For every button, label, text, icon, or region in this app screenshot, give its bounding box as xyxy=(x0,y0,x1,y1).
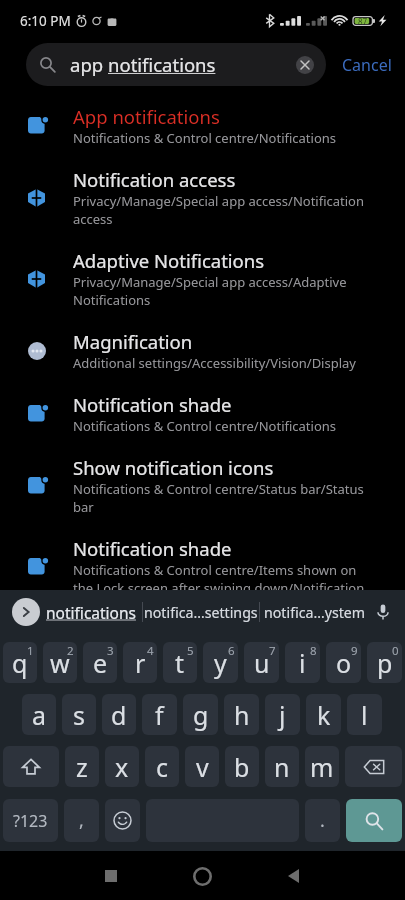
staticText: notifications xyxy=(46,602,136,623)
staticText: Notifications & Control centre/Status ba… xyxy=(73,480,372,516)
button[interactable]: h xyxy=(224,694,259,735)
staticText: g xyxy=(193,698,209,732)
button[interactable]: . xyxy=(305,799,340,842)
staticText: Adaptive Notifications xyxy=(73,248,265,273)
button[interactable]: k xyxy=(306,694,341,735)
button[interactable]: notifica…settings xyxy=(143,590,259,634)
button[interactable]: Notification shade xyxy=(0,526,405,607)
staticText: ?123 xyxy=(13,810,48,832)
staticText: q xyxy=(12,646,28,680)
staticText: j xyxy=(279,698,286,732)
button[interactable]: f xyxy=(142,694,177,735)
button[interactable]: m xyxy=(305,746,339,787)
staticText: w xyxy=(50,646,70,680)
staticText: 87 xyxy=(358,16,368,27)
staticText: Notification access xyxy=(73,167,236,192)
button[interactable]: p xyxy=(367,642,402,683)
staticText: e xyxy=(93,646,108,680)
staticText: notifications xyxy=(108,52,216,77)
button[interactable]: Clear search xyxy=(296,56,314,74)
staticText: 6 xyxy=(228,643,235,659)
staticText: 9 xyxy=(351,643,358,659)
button[interactable]: w xyxy=(43,642,77,683)
staticText: b xyxy=(234,750,250,784)
staticText: notifica…settings xyxy=(144,603,258,622)
staticText: notifica…ystem xyxy=(264,603,366,622)
staticText: 5 xyxy=(187,643,194,659)
button[interactable]: , xyxy=(64,799,99,842)
staticText: i xyxy=(299,646,306,680)
staticText: 0 xyxy=(392,643,399,659)
staticText: l xyxy=(361,698,368,732)
staticText: n xyxy=(274,750,290,784)
button[interactable]: l xyxy=(347,694,382,735)
button[interactable]: ?123 xyxy=(3,799,58,842)
staticText: Cancel xyxy=(342,54,392,76)
staticText: . xyxy=(320,808,325,833)
staticText: 6:10 PM xyxy=(20,12,71,30)
staticText: , xyxy=(79,808,84,833)
button[interactable]: x xyxy=(105,746,139,787)
button[interactable]: y xyxy=(203,642,238,683)
staticText: Additional settings/Accessibility/Vision… xyxy=(73,354,356,372)
staticText: 7 xyxy=(269,643,276,659)
staticText: p xyxy=(377,646,393,680)
button[interactable]: Notification access xyxy=(0,157,405,238)
button[interactable]: b xyxy=(225,746,259,787)
button[interactable]: Magnification xyxy=(0,319,405,382)
staticText: u xyxy=(254,646,270,680)
button[interactable]: Show notification icons xyxy=(0,445,405,526)
button[interactable]: r xyxy=(123,642,157,683)
button[interactable]: Emoji xyxy=(105,799,140,842)
staticText: s xyxy=(73,698,85,732)
staticText: y xyxy=(214,646,227,680)
staticText: Show notification icons xyxy=(73,455,274,480)
button[interactable]: g xyxy=(183,694,218,735)
button[interactable]: n xyxy=(265,746,299,787)
button[interactable]: a xyxy=(22,694,56,735)
button[interactable]: notifica…ystem xyxy=(260,590,370,634)
button[interactable]: i xyxy=(285,642,320,683)
button[interactable]: Cancel xyxy=(326,47,392,83)
button[interactable]: s xyxy=(62,694,96,735)
staticText: 3 xyxy=(107,643,114,659)
button[interactable]: o xyxy=(326,642,361,683)
staticText: App notifications xyxy=(73,104,220,129)
staticText: t xyxy=(175,646,185,680)
button[interactable]: Shift xyxy=(3,746,59,787)
button[interactable]: q xyxy=(3,642,37,683)
button[interactable]: Home xyxy=(180,854,224,898)
button[interactable]: e xyxy=(83,642,117,683)
button[interactable]: Backspace xyxy=(345,746,402,787)
button[interactable]: Search xyxy=(346,799,402,842)
staticText: k xyxy=(317,698,331,732)
staticText: m xyxy=(310,750,334,784)
button[interactable]: App notifications xyxy=(0,94,405,157)
staticText: v xyxy=(196,750,209,784)
button[interactable]: Notification shade xyxy=(0,382,405,445)
button[interactable]: d xyxy=(102,694,136,735)
button[interactable]: c xyxy=(145,746,179,787)
button[interactable]: Voice input xyxy=(370,590,396,634)
button[interactable]: v xyxy=(185,746,219,787)
button[interactable]: u xyxy=(244,642,279,683)
staticText: Notifications & Control centre/Notificat… xyxy=(73,417,337,435)
staticText: Privacy/Manage/Special app access/Notifi… xyxy=(73,192,372,228)
staticText: Notification shade xyxy=(73,536,232,561)
staticText: 8 xyxy=(310,643,317,659)
button[interactable]: t xyxy=(163,642,197,683)
staticText: 1 xyxy=(27,643,34,659)
button[interactable]: notifications xyxy=(40,590,142,634)
button[interactable]: app xyxy=(26,43,326,86)
button[interactable]: j xyxy=(265,694,300,735)
button[interactable]: Back xyxy=(271,854,315,898)
button[interactable]: Recents xyxy=(89,854,133,898)
button[interactable]: More suggestions xyxy=(12,598,40,626)
staticText: d xyxy=(111,698,127,732)
staticText: a xyxy=(32,698,47,732)
staticText: o xyxy=(336,646,352,680)
staticText: Notifications & Control centre/Items sho… xyxy=(73,561,372,597)
button[interactable]: z xyxy=(65,746,99,787)
button[interactable]: Adaptive Notifications xyxy=(0,238,405,319)
